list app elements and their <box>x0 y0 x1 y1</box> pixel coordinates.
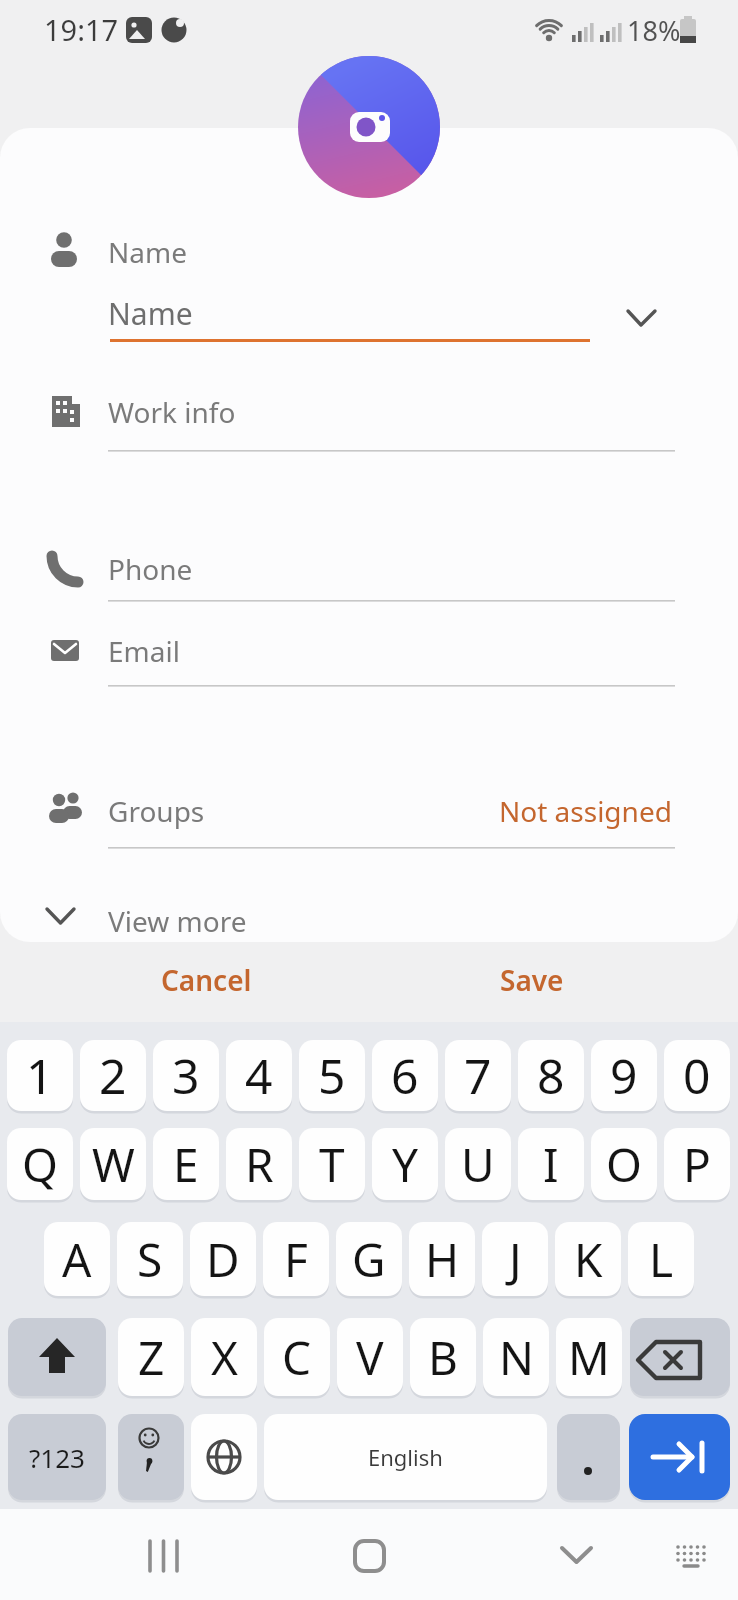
staticText: I <box>543 1133 559 1196</box>
button[interactable]: L <box>628 1222 694 1296</box>
button[interactable]: 3 <box>153 1040 219 1111</box>
button[interactable]: Z <box>118 1318 184 1396</box>
staticText: 5 <box>318 1043 346 1108</box>
button[interactable]: W <box>80 1128 146 1200</box>
staticText: J <box>509 1228 522 1291</box>
staticText: F <box>284 1228 308 1291</box>
staticText: 0 <box>683 1043 711 1108</box>
staticText: N <box>499 1326 534 1389</box>
button[interactable] <box>557 1414 620 1500</box>
staticText: H <box>425 1228 460 1291</box>
staticText: 7 <box>464 1043 492 1108</box>
staticText: M <box>568 1326 610 1389</box>
staticText: X <box>211 1326 238 1389</box>
button[interactable] <box>630 1318 730 1396</box>
staticText: V <box>356 1326 384 1389</box>
staticText: Not assigned <box>499 792 672 830</box>
button[interactable]: X <box>191 1318 257 1396</box>
button[interactable]: 4 <box>226 1040 292 1111</box>
button[interactable]: 9 <box>591 1040 657 1111</box>
button[interactable] <box>610 295 670 341</box>
button[interactable] <box>298 56 440 198</box>
button[interactable]: Work info <box>40 377 700 447</box>
button[interactable]: 5 <box>299 1040 365 1111</box>
staticText: 1 <box>26 1043 54 1108</box>
staticText: U <box>461 1133 495 1196</box>
button[interactable]: 1 <box>7 1040 73 1111</box>
button[interactable]: M <box>556 1318 622 1396</box>
button[interactable]: H <box>409 1222 475 1296</box>
button[interactable] <box>191 1414 257 1500</box>
staticText: Phone <box>108 550 193 588</box>
button[interactable]: R <box>226 1128 292 1200</box>
staticText: W <box>92 1133 135 1196</box>
staticText: K <box>574 1228 603 1291</box>
staticText: R <box>245 1133 274 1196</box>
button[interactable]: ?123 <box>8 1414 106 1500</box>
button[interactable]: Q <box>7 1128 73 1200</box>
button[interactable]: G <box>336 1222 402 1296</box>
button[interactable]: 8 <box>518 1040 584 1111</box>
button[interactable]: N <box>483 1318 549 1396</box>
button[interactable]: T <box>299 1128 365 1200</box>
staticText: O <box>606 1133 642 1196</box>
staticText: G <box>352 1228 386 1291</box>
button[interactable]: S <box>117 1222 183 1296</box>
button[interactable]: I <box>518 1128 584 1200</box>
staticText: ?123 <box>29 1440 85 1475</box>
button[interactable]: D <box>190 1222 256 1296</box>
button[interactable]: J <box>482 1222 548 1296</box>
button[interactable]: K <box>555 1222 621 1296</box>
button[interactable]: A <box>44 1222 110 1296</box>
button[interactable] <box>629 1414 730 1500</box>
staticText: Z <box>138 1326 165 1389</box>
button[interactable]: C <box>264 1318 330 1396</box>
staticText: Name <box>108 293 193 334</box>
staticText: 8 <box>537 1043 565 1108</box>
button[interactable]: Cancel <box>146 950 266 1010</box>
button[interactable]: B <box>410 1318 476 1396</box>
staticText: B <box>428 1326 458 1389</box>
staticText: 18% <box>627 12 681 46</box>
button[interactable]: English <box>264 1414 547 1500</box>
button[interactable]: F <box>263 1222 329 1296</box>
button[interactable] <box>8 1318 106 1396</box>
button[interactable]: Name <box>108 285 590 341</box>
button[interactable] <box>118 1414 184 1500</box>
button[interactable]: 2 <box>80 1040 146 1111</box>
button[interactable]: 0 <box>664 1040 730 1111</box>
staticText: View more <box>108 902 247 938</box>
staticText: Q <box>22 1133 58 1196</box>
button[interactable] <box>120 1520 206 1592</box>
button[interactable]: Save <box>472 950 592 1010</box>
staticText: L <box>649 1228 674 1291</box>
button[interactable]: P <box>664 1128 730 1200</box>
button[interactable]: Phone <box>40 538 700 600</box>
staticText: A <box>62 1228 92 1291</box>
staticText: Email <box>108 632 180 670</box>
button[interactable] <box>652 1524 722 1590</box>
staticText: 6 <box>391 1043 419 1108</box>
button[interactable]: E <box>153 1128 219 1200</box>
button[interactable]: 7 <box>445 1040 511 1111</box>
staticText: Y <box>392 1133 419 1196</box>
staticText: C <box>282 1326 312 1389</box>
button[interactable]: Y <box>372 1128 438 1200</box>
button[interactable]: U <box>445 1128 511 1200</box>
button[interactable]: View more <box>40 902 700 938</box>
staticText: Groups <box>108 792 205 830</box>
staticText: 4 <box>245 1043 273 1108</box>
button[interactable] <box>328 1520 412 1592</box>
staticText: Work info <box>108 393 236 431</box>
staticText: Save <box>500 961 564 999</box>
staticText: 3 <box>172 1043 200 1108</box>
button[interactable]: O <box>591 1128 657 1200</box>
button[interactable]: 6 <box>372 1040 438 1111</box>
staticText: 19:17 <box>44 10 119 48</box>
button[interactable] <box>534 1520 618 1592</box>
button[interactable]: V <box>337 1318 403 1396</box>
staticText: P <box>683 1133 711 1196</box>
button[interactable]: Email <box>40 620 700 682</box>
button[interactable]: Groups <box>40 777 700 845</box>
staticText: T <box>319 1133 345 1196</box>
